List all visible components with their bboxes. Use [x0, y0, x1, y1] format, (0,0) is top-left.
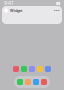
staticText: Widget [10, 8, 22, 13]
staticText: 9:41 [4, 0, 14, 7]
staticText: ••• [54, 8, 60, 13]
staticText: ▮▮ [56, 1, 60, 5]
